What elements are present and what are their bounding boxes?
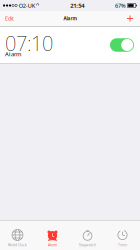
button[interactable]: Alarm [35,221,70,250]
staticText: Stopwatch [79,243,96,247]
staticText: 67% [115,2,126,9]
staticText: O2-UK [19,2,35,9]
staticText: 07:10 [5,30,53,57]
staticText: Alarm [48,243,57,247]
button[interactable]: Timer [105,221,140,250]
button[interactable]: Add alarm [122,11,140,26]
staticText: World Clock [8,243,27,247]
staticText: Alarm [63,15,76,22]
button[interactable]: Edit [0,11,19,26]
button[interactable]: Stopwatch [70,221,105,250]
staticText: Edit [5,15,14,22]
staticText: Timer [118,243,127,247]
staticText: Alarm [5,50,21,58]
button[interactable]: World Clock [0,221,35,250]
button[interactable]: 07:10 [0,27,140,63]
staticText: 21:54 [70,1,84,9]
